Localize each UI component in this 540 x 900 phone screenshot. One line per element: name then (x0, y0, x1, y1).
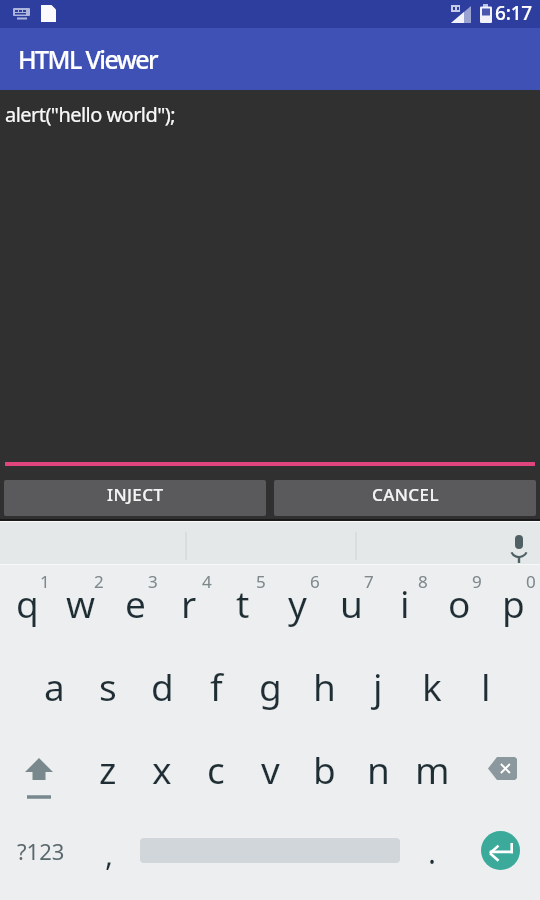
button[interactable]: Backspace (466, 732, 540, 815)
button[interactable]: s (81, 648, 135, 732)
staticText: z (99, 744, 117, 794)
staticText: . (428, 832, 437, 873)
staticText: CANCEL (372, 483, 439, 506)
staticText: 5 (256, 570, 266, 593)
staticText: f (210, 661, 223, 711)
staticText: s (99, 661, 117, 711)
button[interactable]: v (243, 732, 297, 815)
staticText: g (259, 661, 282, 711)
button[interactable]: . (403, 815, 459, 900)
button[interactable]: l (459, 648, 513, 732)
staticText: q (16, 578, 39, 628)
button[interactable]: h (297, 648, 351, 732)
button[interactable]: 3 (108, 565, 162, 648)
button[interactable]: 1 (0, 565, 54, 648)
staticText: r (181, 578, 197, 628)
button[interactable]: ?123 (0, 815, 81, 900)
button[interactable]: n (351, 732, 405, 815)
button[interactable]: 2 (54, 565, 108, 648)
button[interactable]: f (189, 648, 243, 732)
staticText: n (367, 744, 390, 794)
button[interactable]: x (135, 732, 189, 815)
button[interactable]: z (81, 732, 135, 815)
staticText: , (105, 834, 114, 875)
button[interactable]: 4 (162, 565, 216, 648)
staticText: v (261, 744, 280, 794)
button[interactable]: m (405, 732, 459, 815)
staticText: j (373, 661, 383, 711)
staticText: 4 (202, 570, 212, 593)
button[interactable]: 8 (378, 565, 432, 648)
staticText: HTML Viewer (18, 42, 158, 76)
staticText: x (152, 744, 172, 794)
staticText: 7 (364, 570, 374, 593)
staticText: w (66, 578, 96, 628)
button[interactable]: INJECT (4, 480, 266, 516)
button[interactable]: Shift (0, 732, 74, 815)
staticText: e (125, 578, 146, 628)
button[interactable]: k (405, 648, 459, 732)
staticText: 0 (526, 570, 536, 593)
button[interactable]: 5 (216, 565, 270, 648)
staticText: 3 (148, 570, 158, 593)
staticText: o (448, 578, 471, 628)
button[interactable]: 6 (270, 565, 324, 648)
staticText: 2 (94, 570, 104, 593)
staticText: y (288, 578, 307, 628)
button[interactable]: 0 (486, 565, 540, 648)
staticText: a (44, 661, 65, 711)
button[interactable]: CANCEL (274, 480, 536, 516)
button[interactable]: Voice input (496, 522, 540, 564)
staticText: 9 (472, 570, 482, 593)
staticText: ?123 (17, 836, 65, 866)
button[interactable]: , (81, 815, 137, 900)
staticText: t (236, 578, 250, 628)
staticText: k (422, 661, 442, 711)
staticText: INJECT (107, 483, 164, 506)
staticText: 6:17 (495, 0, 532, 26)
staticText: h (313, 661, 336, 711)
staticText: p (502, 578, 525, 628)
staticText: d (151, 661, 174, 711)
button[interactable]: 9 (432, 565, 486, 648)
staticText: b (313, 744, 336, 794)
button[interactable]: g (243, 648, 297, 732)
button[interactable]: Space (137, 815, 403, 900)
button[interactable]: b (297, 732, 351, 815)
button[interactable]: d (135, 648, 189, 732)
staticText: alert("hello world"); (5, 101, 176, 128)
button[interactable]: c (189, 732, 243, 815)
staticText: m (415, 744, 450, 794)
button[interactable]: Enter (481, 831, 520, 870)
staticText: 6 (310, 570, 320, 593)
button[interactable]: JavaScript code input (0, 90, 540, 466)
staticText: u (340, 578, 363, 628)
button[interactable]: j (351, 648, 405, 732)
staticText: 1 (40, 570, 50, 593)
staticText: c (207, 744, 225, 794)
button[interactable]: 7 (324, 565, 378, 648)
staticText: 8 (418, 570, 428, 593)
staticText: i (400, 578, 410, 628)
staticText: l (481, 661, 491, 711)
button[interactable]: a (27, 648, 81, 732)
